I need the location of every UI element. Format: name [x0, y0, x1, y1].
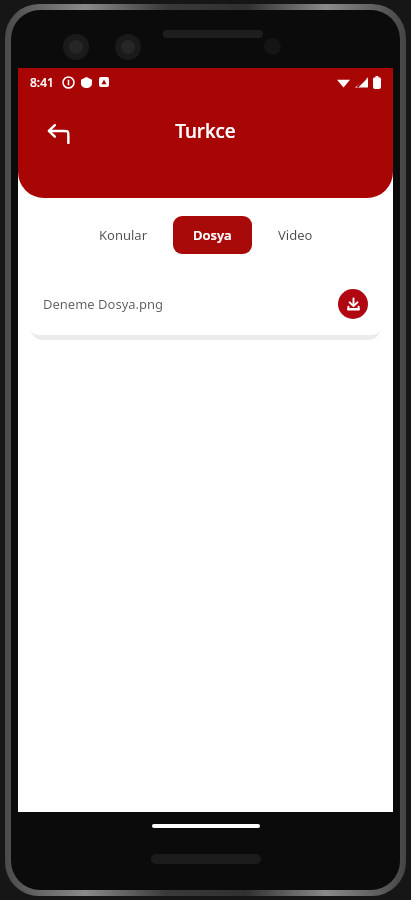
button[interactable]: Deneme Dosya.png	[27, 273, 384, 335]
staticText: Dosya	[193, 226, 232, 244]
staticText: 8:41	[30, 74, 54, 90]
button[interactable]: Video	[266, 216, 325, 254]
button[interactable]: Back	[38, 112, 80, 154]
button[interactable]: Download	[338, 289, 368, 319]
staticText: Konular	[99, 226, 147, 244]
staticText: Deneme Dosya.png	[43, 295, 338, 313]
button[interactable]: Dosya	[173, 216, 252, 254]
staticText: Video	[278, 226, 313, 244]
staticText: Turkce	[175, 118, 236, 144]
button[interactable]: Konular	[87, 216, 159, 254]
